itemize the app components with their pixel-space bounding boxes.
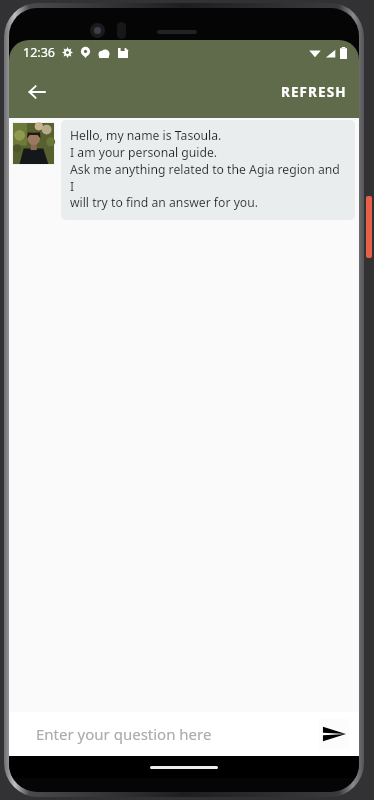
button[interactable]: REFRESH [269, 73, 359, 111]
staticText: 12:36 [23, 44, 55, 61]
button[interactable]: Enter your question here [9, 712, 317, 756]
staticText: will try to find an answer for you. [70, 194, 259, 211]
button[interactable]: Hello, my name is Tasoula. [61, 120, 355, 220]
button[interactable]: Back [15, 70, 59, 114]
button[interactable]: Send [317, 717, 351, 751]
staticText: Ask me anything related to the Agia regi… [70, 161, 347, 194]
staticText: I am your personal guide. [70, 144, 218, 161]
staticText: REFRESH [281, 83, 347, 101]
staticText: Enter your question here [36, 724, 212, 744]
staticText: Hello, my name is Tasoula. [70, 127, 222, 144]
